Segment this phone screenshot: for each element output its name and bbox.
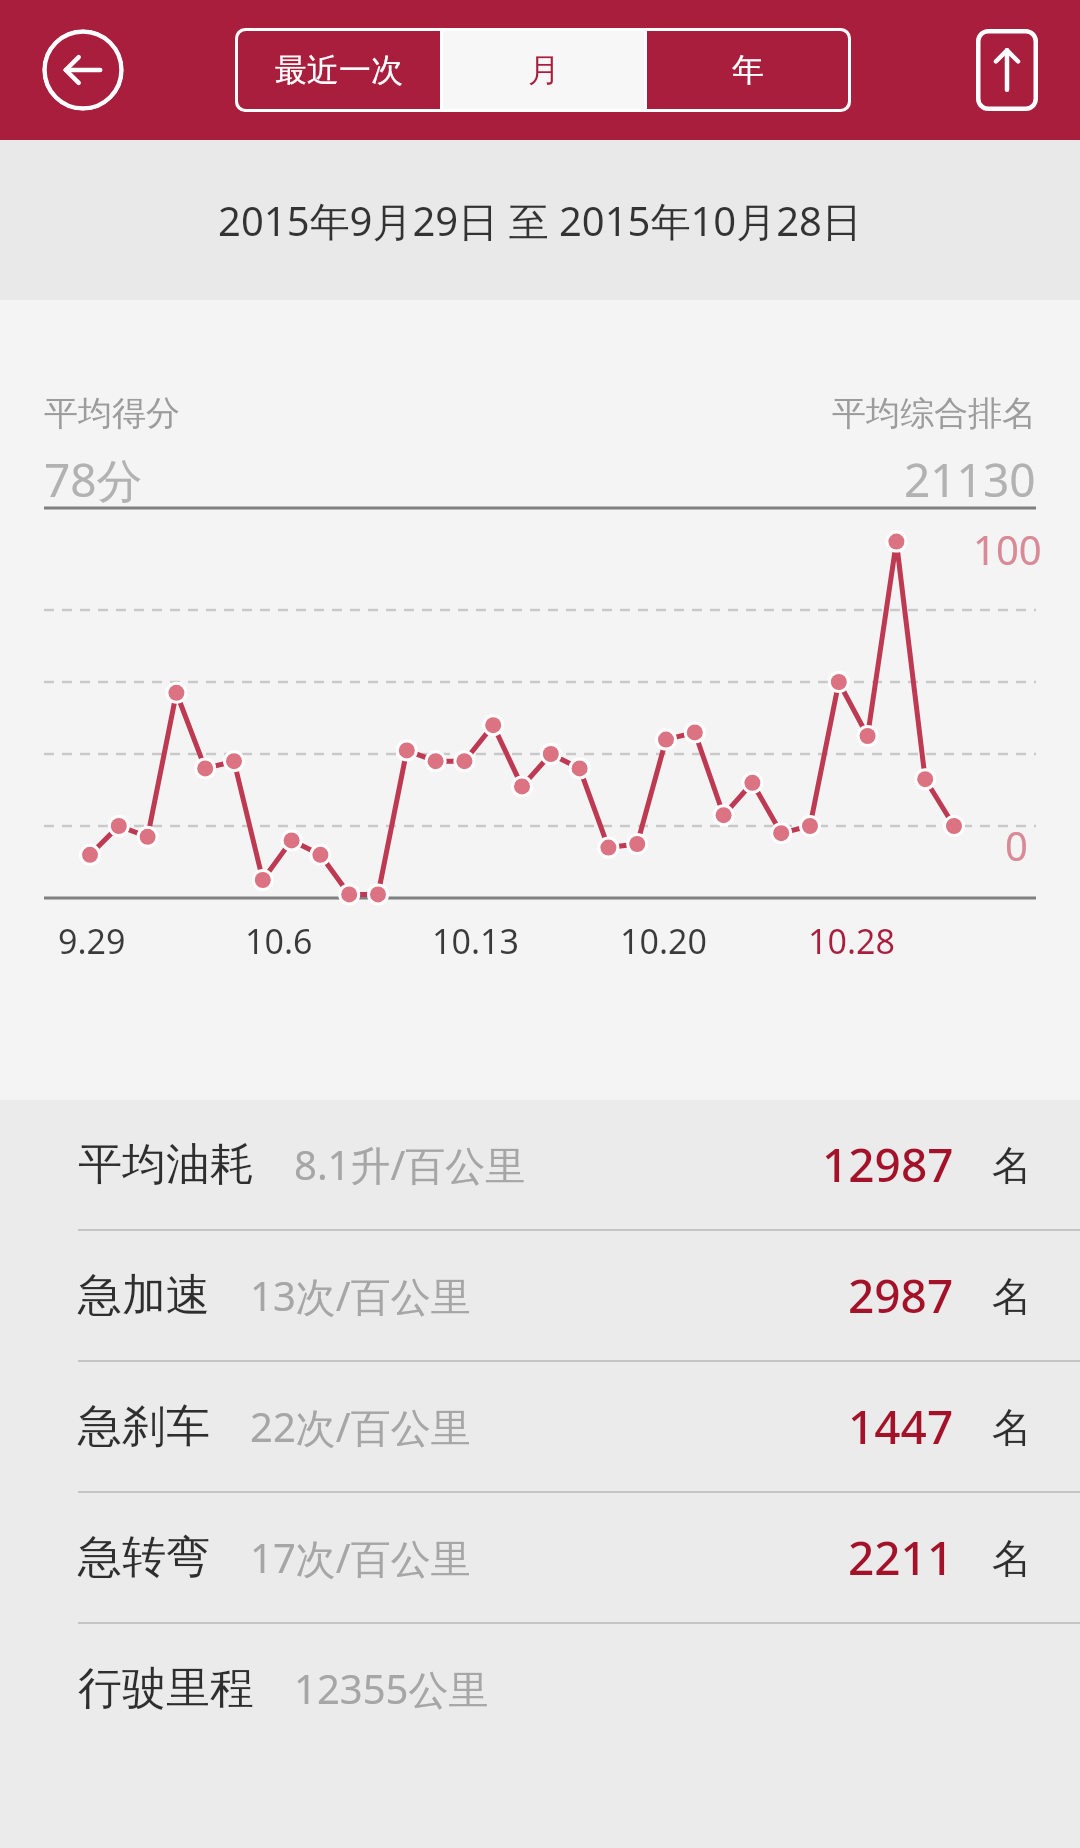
- staticText: 22次/百公里: [250, 1399, 471, 1454]
- staticText: 10.20: [620, 918, 707, 964]
- staticText: 名: [992, 1271, 1032, 1321]
- staticText: 10.28: [808, 918, 895, 964]
- staticText: 8.1升/百公里: [294, 1137, 526, 1192]
- button[interactable]: 急加速: [0, 1231, 1080, 1360]
- button[interactable]: 行驶里程: [0, 1624, 1080, 1753]
- staticText: 10.6: [245, 918, 313, 964]
- staticText: 12355公里: [294, 1661, 489, 1716]
- button[interactable]: Back: [42, 29, 124, 111]
- staticText: 2015年9月29日 至 2015年10月28日: [218, 193, 862, 248]
- staticText: 21130: [904, 448, 1036, 511]
- staticText: 78分: [44, 448, 143, 511]
- staticText: 9.29: [58, 918, 126, 964]
- button[interactable]: Share: [976, 29, 1038, 111]
- button[interactable]: 月: [443, 31, 644, 109]
- staticText: 名: [992, 1402, 1032, 1452]
- staticText: 17次/百公里: [250, 1530, 471, 1585]
- staticText: 行驶里程: [78, 1661, 254, 1716]
- staticText: 平均综合排名: [832, 392, 1036, 435]
- staticText: 100: [973, 522, 1042, 576]
- staticText: 1447: [848, 1395, 954, 1458]
- staticText: 月: [528, 50, 560, 90]
- button[interactable]: 平均油耗: [0, 1100, 1080, 1229]
- staticText: 平均得分: [44, 392, 180, 435]
- staticText: 10.13: [432, 918, 519, 964]
- button[interactable]: 急刹车: [0, 1362, 1080, 1491]
- staticText: 最近一次: [275, 50, 403, 90]
- button[interactable]: 年: [647, 31, 848, 109]
- staticText: 名: [992, 1533, 1032, 1583]
- staticText: 0: [1005, 818, 1028, 872]
- staticText: 平均油耗: [78, 1137, 254, 1192]
- staticText: 2211: [848, 1526, 954, 1589]
- staticText: 2987: [848, 1264, 954, 1327]
- staticText: 12987: [822, 1133, 954, 1196]
- staticText: 急转弯: [78, 1530, 210, 1585]
- staticText: 13次/百公里: [250, 1268, 471, 1323]
- staticText: 急加速: [78, 1268, 210, 1323]
- button[interactable]: 急转弯: [0, 1493, 1080, 1622]
- staticText: 急刹车: [78, 1399, 210, 1454]
- button[interactable]: 最近一次: [238, 31, 440, 109]
- staticText: 年: [732, 50, 764, 90]
- staticText: 名: [992, 1140, 1032, 1190]
